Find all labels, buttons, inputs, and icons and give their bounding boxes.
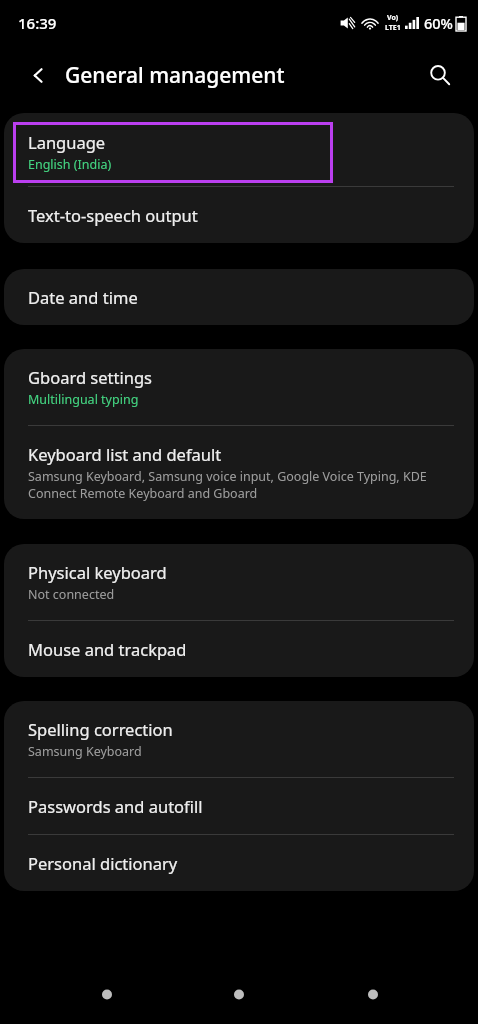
staticText: Language [28, 131, 106, 153]
staticText: Gboard settings [28, 366, 152, 388]
staticText: Mouse and trackpad [28, 638, 187, 660]
button[interactable]: Back [351, 973, 395, 1017]
staticText: Personal dictionary [28, 852, 178, 874]
staticText: 60% [424, 13, 453, 33]
staticText: Physical keyboard [28, 561, 167, 583]
button[interactable]: Back [15, 52, 61, 98]
staticText: Vo) [387, 13, 399, 23]
staticText: Text-to-speech output [28, 204, 198, 226]
button[interactable]: Spelling correction [4, 701, 474, 777]
staticText: Samsung Keyboard, Samsung voice input, G… [28, 468, 452, 502]
staticText: General management [65, 61, 285, 90]
staticText: Spelling correction [28, 718, 173, 740]
button[interactable]: Date and time [4, 269, 474, 325]
button[interactable]: Home [217, 973, 261, 1017]
button[interactable]: Search [418, 53, 462, 97]
button[interactable]: Keyboard list and default [4, 426, 474, 519]
button[interactable]: Recents [85, 973, 129, 1017]
staticText: Keyboard list and default [28, 443, 222, 465]
button[interactable]: Personal dictionary [4, 835, 474, 891]
staticText: LTE1 [385, 23, 401, 33]
button[interactable]: Text-to-speech output [4, 187, 474, 243]
staticText: Multilingual typing [28, 391, 139, 408]
staticText: 16:39 [18, 13, 57, 33]
staticText: Passwords and autofill [28, 795, 203, 817]
button[interactable]: Passwords and autofill [4, 778, 474, 834]
button[interactable]: Gboard settings [4, 349, 474, 425]
button[interactable]: Mouse and trackpad [4, 621, 474, 677]
button[interactable]: Language [4, 113, 474, 186]
button[interactable]: Physical keyboard [4, 544, 474, 620]
staticText: Date and time [28, 286, 138, 308]
staticText: English (India) [28, 156, 112, 173]
staticText: Not connected [28, 586, 115, 603]
staticText: Samsung Keyboard [28, 743, 142, 760]
